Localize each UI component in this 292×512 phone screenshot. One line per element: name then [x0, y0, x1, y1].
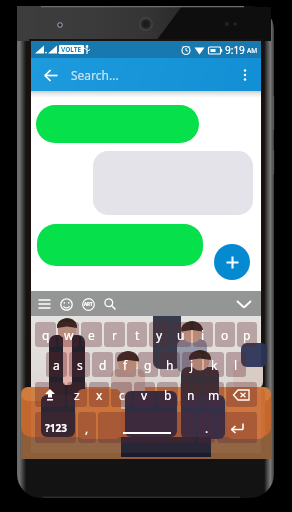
- button[interactable]: u: [171, 322, 191, 347]
- button[interactable]: l: [226, 352, 246, 377]
- button[interactable]: q: [35, 322, 56, 347]
- button[interactable]: a: [46, 352, 67, 377]
- staticText: l: [234, 357, 238, 373]
- button[interactable]: s: [69, 352, 90, 377]
- button[interactable]: f: [115, 352, 136, 377]
- button[interactable]: ?123: [35, 412, 76, 443]
- button[interactable]: Shift: [35, 382, 65, 407]
- button[interactable]: y: [149, 322, 169, 347]
- staticText: n: [187, 387, 195, 403]
- button[interactable]: m: [203, 382, 224, 407]
- button[interactable]: .: [198, 412, 215, 443]
- staticText: q: [42, 327, 50, 343]
- button[interactable]: t: [127, 322, 147, 347]
- button[interactable]: j: [182, 352, 202, 377]
- staticText: 9:19: [225, 43, 245, 57]
- button[interactable]: c: [111, 382, 132, 407]
- staticText: o: [221, 327, 229, 343]
- button[interactable]: Backspace: [226, 382, 257, 407]
- button[interactable]: [93, 151, 253, 215]
- button[interactable]: Hide keyboard: [232, 292, 256, 316]
- staticText: a: [53, 357, 60, 373]
- staticText: AM: [247, 46, 258, 55]
- button[interactable]: Search: [102, 296, 118, 312]
- staticText: b: [164, 387, 172, 403]
- button[interactable]: r: [104, 322, 125, 347]
- staticText: j: [190, 357, 194, 373]
- button[interactable]: Enter: [217, 412, 257, 443]
- button[interactable]: Emoji: [58, 296, 74, 312]
- button[interactable]: z: [67, 382, 87, 407]
- button[interactable]: v: [134, 382, 155, 407]
- staticText: x: [96, 387, 103, 403]
- button[interactable]: d: [92, 352, 113, 377]
- staticText: p: [243, 327, 251, 343]
- staticText: m: [208, 387, 220, 403]
- button[interactable]: Menu: [36, 296, 52, 312]
- staticText: t: [135, 327, 140, 343]
- button[interactable]: w: [58, 322, 79, 347]
- staticText: h: [166, 357, 174, 373]
- button[interactable]: i: [193, 322, 213, 347]
- button[interactable]: o: [215, 322, 235, 347]
- staticText: c: [119, 387, 125, 403]
- staticText: f: [123, 357, 128, 373]
- button[interactable]: b: [157, 382, 178, 407]
- staticText: r: [112, 327, 117, 343]
- button[interactable]: More options: [234, 64, 256, 86]
- button[interactable]: h: [160, 352, 180, 377]
- button[interactable]: [36, 105, 199, 143]
- staticText: VOLTE: [61, 45, 82, 54]
- staticText: ,: [85, 420, 89, 436]
- staticText: Search...: [71, 67, 119, 83]
- button[interactable]: e: [81, 322, 102, 347]
- button[interactable]: x: [89, 382, 109, 407]
- staticText: u: [177, 327, 185, 343]
- button[interactable]: Back: [37, 62, 63, 88]
- staticText: s: [77, 357, 83, 373]
- staticText: i: [201, 327, 205, 343]
- button[interactable]: Space: [98, 412, 196, 443]
- staticText: z: [74, 387, 80, 403]
- button[interactable]: n: [180, 382, 201, 407]
- staticText: k: [211, 357, 218, 373]
- button[interactable]: k: [204, 352, 224, 377]
- button[interactable]: ,: [78, 412, 96, 443]
- button[interactable]: p: [237, 322, 257, 347]
- button[interactable]: Add: [214, 244, 250, 280]
- staticText: w: [64, 327, 74, 343]
- button[interactable]: Art: [80, 296, 96, 312]
- staticText: v: [141, 387, 148, 403]
- staticText: e: [88, 327, 95, 343]
- staticText: ?123: [45, 421, 67, 435]
- staticText: ART: [84, 301, 93, 307]
- staticText: .: [205, 420, 209, 436]
- staticText: y: [156, 327, 163, 343]
- button[interactable]: g: [138, 352, 158, 377]
- staticText: g: [144, 357, 152, 373]
- staticText: d: [99, 357, 107, 373]
- button[interactable]: [37, 224, 203, 266]
